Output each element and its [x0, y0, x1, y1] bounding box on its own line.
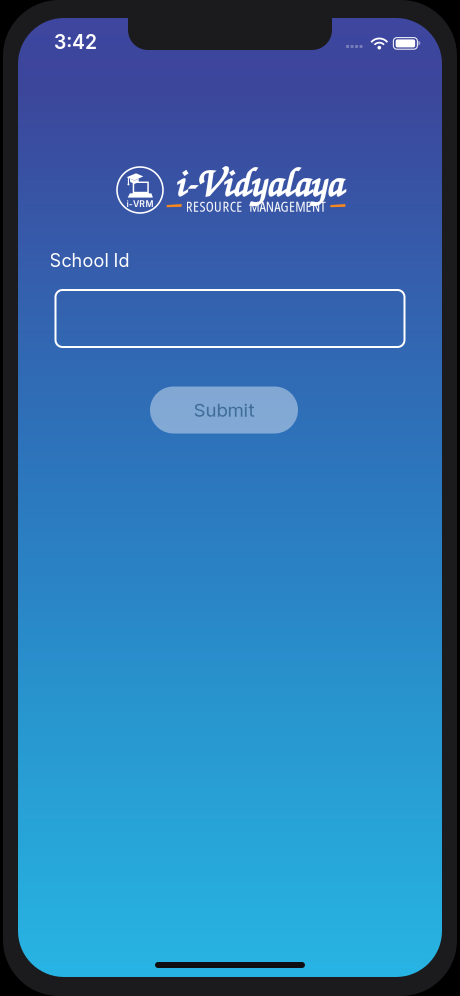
staticText: i-VRM	[127, 199, 153, 209]
staticText: RESOURCE MANAGEMENT	[186, 196, 326, 216]
staticText: i-Vidyalaya	[174, 155, 342, 207]
staticText: Submit	[193, 399, 254, 421]
staticText: 3:42	[54, 30, 97, 54]
staticText: School Id	[49, 250, 129, 271]
button[interactable]: Submit	[150, 386, 298, 433]
